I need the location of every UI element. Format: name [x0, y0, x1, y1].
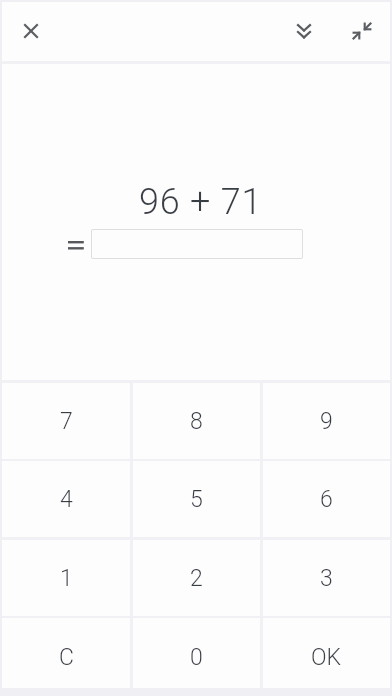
button[interactable]: 4: [2, 461, 130, 537]
button[interactable]: 6: [263, 461, 390, 537]
button[interactable]: 1: [2, 540, 130, 616]
button[interactable]: 3: [263, 540, 390, 616]
button[interactable]: 2: [133, 540, 260, 616]
button[interactable]: 9: [263, 383, 390, 459]
staticText: 9: [320, 408, 333, 435]
staticText: 8: [190, 408, 203, 435]
staticText: 7: [60, 408, 73, 435]
staticText: 96 + 71: [139, 181, 263, 223]
staticText: 2: [190, 565, 203, 592]
button[interactable]: 7: [2, 383, 130, 459]
button[interactable]: [282, 10, 326, 54]
button[interactable]: 8: [133, 383, 260, 459]
staticText: 0: [190, 644, 203, 671]
staticText: 3: [320, 565, 333, 592]
staticText: C: [59, 644, 74, 671]
button[interactable]: OK: [263, 618, 390, 696]
staticText: 6: [320, 486, 333, 513]
staticText: 4: [60, 486, 73, 513]
staticText: OK: [311, 644, 342, 671]
button[interactable]: C: [2, 618, 130, 696]
button[interactable]: 5: [133, 461, 260, 537]
staticText: 1: [60, 565, 73, 592]
staticText: 5: [190, 486, 203, 513]
button[interactable]: [10, 10, 54, 54]
button[interactable]: 0: [133, 618, 260, 696]
button[interactable]: [91, 229, 303, 259]
button[interactable]: [340, 10, 384, 54]
